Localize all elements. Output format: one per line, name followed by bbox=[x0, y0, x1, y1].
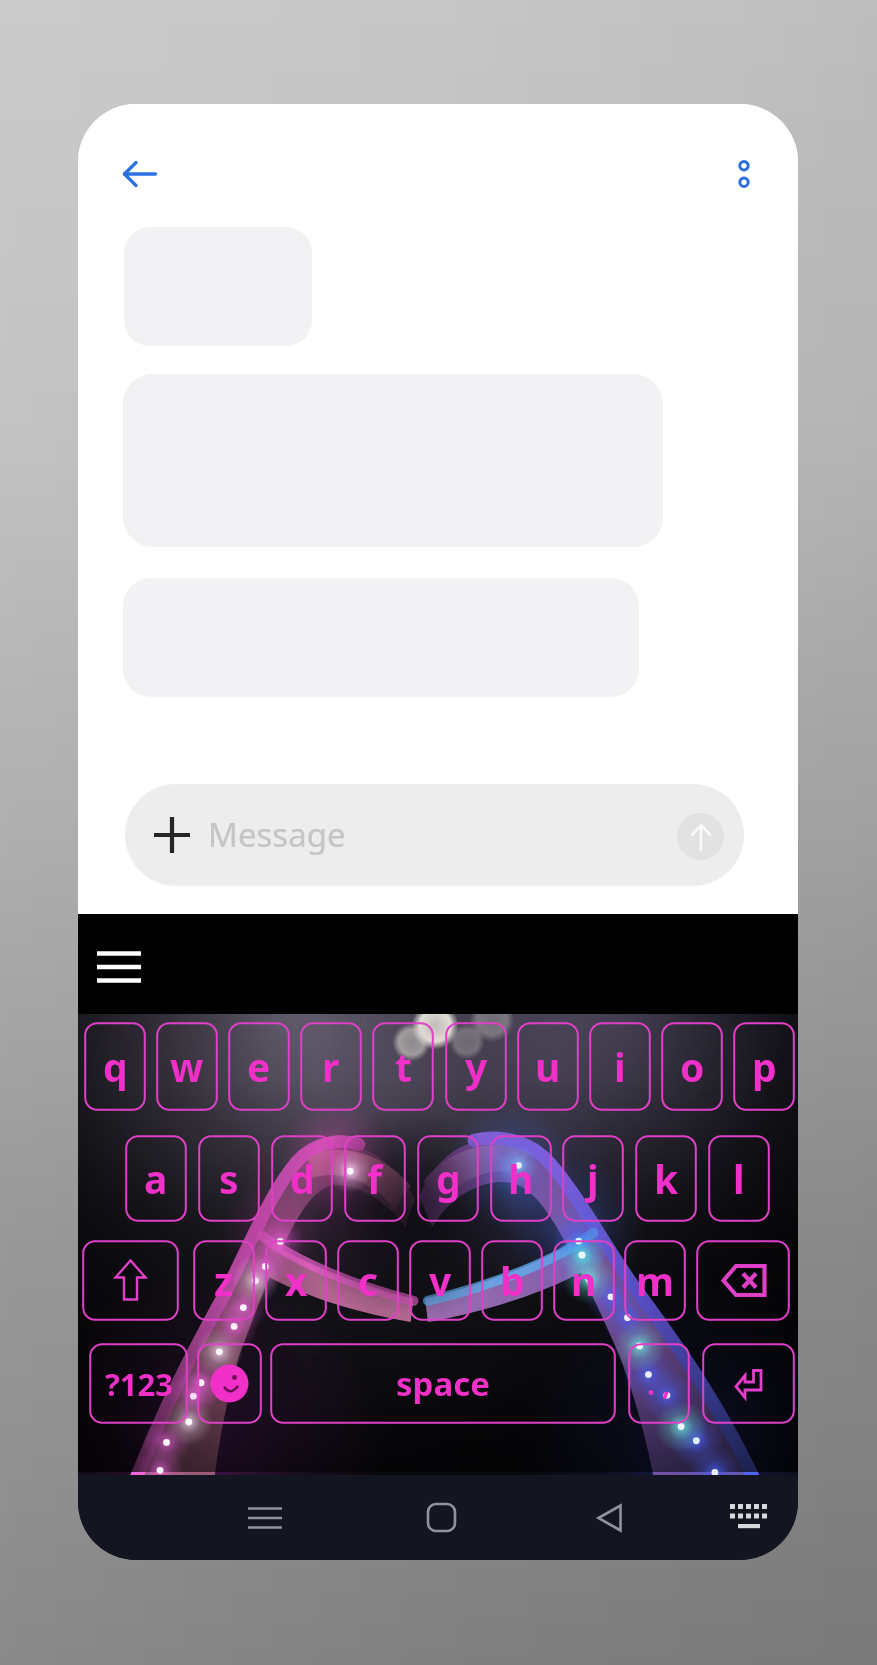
staticText: x bbox=[285, 1254, 308, 1307]
staticText: Message bbox=[208, 812, 346, 857]
button[interactable]: m bbox=[624, 1240, 686, 1321]
staticText: b bbox=[500, 1254, 525, 1307]
staticText: a bbox=[144, 1152, 168, 1205]
button[interactable]: y bbox=[445, 1022, 507, 1111]
button[interactable]: More options bbox=[714, 144, 774, 204]
staticText: n bbox=[571, 1254, 597, 1307]
staticText: j bbox=[587, 1152, 599, 1205]
button[interactable]: u bbox=[517, 1022, 579, 1111]
button[interactable]: j bbox=[562, 1135, 624, 1222]
button[interactable]: d bbox=[271, 1135, 333, 1222]
staticText: s bbox=[219, 1152, 239, 1205]
staticText: c bbox=[358, 1254, 379, 1307]
staticText: g bbox=[436, 1152, 461, 1205]
button[interactable]: Back bbox=[557, 1475, 661, 1560]
button[interactable]: e bbox=[228, 1022, 290, 1111]
staticText: m bbox=[636, 1254, 675, 1307]
button[interactable]: l bbox=[708, 1135, 770, 1222]
staticText: p bbox=[752, 1040, 777, 1093]
staticText: i bbox=[614, 1040, 626, 1093]
staticText: y bbox=[465, 1040, 488, 1093]
staticText: q bbox=[103, 1040, 128, 1093]
staticText: l bbox=[733, 1152, 745, 1205]
button[interactable]: t bbox=[372, 1022, 434, 1111]
button[interactable]: Enter bbox=[702, 1343, 795, 1424]
button[interactable]: x bbox=[265, 1240, 327, 1321]
staticText: f bbox=[367, 1152, 383, 1205]
button[interactable]: s bbox=[198, 1135, 260, 1222]
button[interactable]: . , bbox=[628, 1343, 690, 1424]
button[interactable]: Message bbox=[125, 784, 744, 886]
button[interactable]: f bbox=[344, 1135, 406, 1222]
button[interactable]: n bbox=[553, 1240, 615, 1321]
staticText: r bbox=[322, 1040, 340, 1093]
button[interactable]: Emoji bbox=[197, 1343, 262, 1424]
button[interactable]: r bbox=[300, 1022, 362, 1111]
button[interactable]: b bbox=[481, 1240, 543, 1321]
button[interactable]: ?123 bbox=[89, 1343, 188, 1424]
button[interactable]: k bbox=[635, 1135, 697, 1222]
button[interactable]: w bbox=[156, 1022, 218, 1111]
button[interactable]: Home bbox=[389, 1475, 493, 1560]
button[interactable]: a bbox=[125, 1135, 187, 1222]
staticText: k bbox=[654, 1152, 679, 1205]
staticText: ?123 bbox=[105, 1363, 173, 1405]
button[interactable]: Recent apps bbox=[213, 1475, 317, 1560]
button[interactable]: space bbox=[270, 1343, 616, 1424]
button[interactable]: Keyboard menu bbox=[82, 934, 156, 1000]
staticText: e bbox=[247, 1040, 271, 1093]
button[interactable]: c bbox=[337, 1240, 399, 1321]
staticText: z bbox=[214, 1254, 234, 1307]
button[interactable]: i bbox=[589, 1022, 651, 1111]
button[interactable]: Back bbox=[106, 140, 174, 208]
button[interactable]: q bbox=[84, 1022, 146, 1111]
button[interactable]: Backspace bbox=[696, 1240, 790, 1321]
staticText: space bbox=[396, 1361, 490, 1406]
button[interactable]: Shift bbox=[82, 1240, 179, 1321]
staticText: u bbox=[535, 1040, 561, 1093]
staticText: d bbox=[290, 1152, 315, 1205]
button[interactable]: h bbox=[490, 1135, 552, 1222]
button[interactable]: z bbox=[193, 1240, 255, 1321]
staticText: h bbox=[508, 1152, 534, 1205]
staticText: w bbox=[170, 1040, 204, 1093]
staticText: . , bbox=[647, 1365, 671, 1403]
button[interactable]: Send bbox=[677, 813, 724, 860]
button[interactable]: p bbox=[733, 1022, 795, 1111]
button[interactable]: g bbox=[417, 1135, 479, 1222]
staticText: v bbox=[429, 1254, 452, 1307]
staticText: t bbox=[395, 1040, 412, 1093]
staticText: o bbox=[680, 1040, 705, 1093]
button[interactable]: Hide keyboard bbox=[697, 1475, 798, 1560]
button[interactable]: v bbox=[409, 1240, 471, 1321]
button[interactable]: o bbox=[661, 1022, 723, 1111]
